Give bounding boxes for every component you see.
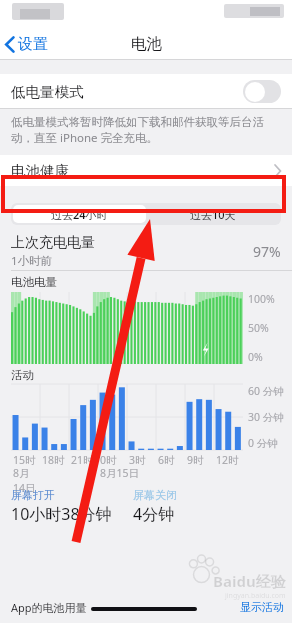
- staticText: 电池电量: [11, 275, 57, 289]
- staticText: 设置: [18, 35, 48, 54]
- staticText: 低电量模式将暂时降低如下载和邮件获取等后台活动，直至 iPhone 完全充电。: [11, 115, 276, 145]
- staticText: 60 分钟: [248, 384, 284, 398]
- staticText: 6时: [158, 453, 175, 467]
- staticText: 8月14日: [13, 466, 40, 494]
- staticText: 活动: [11, 368, 34, 382]
- staticText: 低电量模式: [11, 83, 84, 101]
- staticText: 电池: [131, 34, 162, 54]
- staticText: 10小时38分钟: [11, 503, 112, 525]
- button[interactable]: 低电量模式开关: [243, 80, 281, 103]
- staticText: App的电池用量: [11, 600, 87, 615]
- staticText: 3时: [129, 453, 146, 467]
- staticText: 0时: [100, 453, 117, 467]
- button[interactable]: 过去10天: [146, 205, 279, 223]
- staticText: Baidu经验: [213, 571, 286, 591]
- staticText: 过去10天: [190, 207, 236, 222]
- button[interactable]: 过去24小时: [13, 205, 146, 223]
- button[interactable]: 显示活动: [240, 600, 284, 614]
- staticText: 屏幕打开: [11, 488, 55, 502]
- staticText: 上次充电电量: [11, 234, 95, 252]
- staticText: 0 分钟: [248, 436, 278, 450]
- staticText: 12时: [216, 453, 239, 467]
- staticText: 电池健康: [11, 162, 69, 180]
- staticText: 21时: [71, 453, 94, 467]
- staticText: 15时: [13, 453, 36, 467]
- staticText: 屏幕关闭: [133, 488, 177, 502]
- staticText: 0%: [248, 350, 263, 364]
- button[interactable]: 电池健康: [0, 155, 292, 186]
- staticText: 1小时前: [11, 253, 53, 269]
- staticText: 8月15日: [100, 466, 140, 480]
- staticText: 97%: [253, 242, 281, 261]
- staticText: 过去24小时: [51, 207, 108, 222]
- button[interactable]: 设置: [0, 28, 56, 60]
- button[interactable]: 低电量模式: [0, 74, 292, 109]
- staticText: 18时: [42, 453, 65, 467]
- staticText: jingyan.baidu.com: [225, 591, 286, 601]
- staticText: 显示活动: [240, 600, 284, 614]
- staticText: 4分钟: [133, 503, 175, 525]
- staticText: 30 分钟: [248, 410, 284, 424]
- staticText: 100%: [248, 292, 275, 306]
- staticText: 9时: [187, 453, 204, 467]
- staticText: 50%: [248, 321, 269, 335]
